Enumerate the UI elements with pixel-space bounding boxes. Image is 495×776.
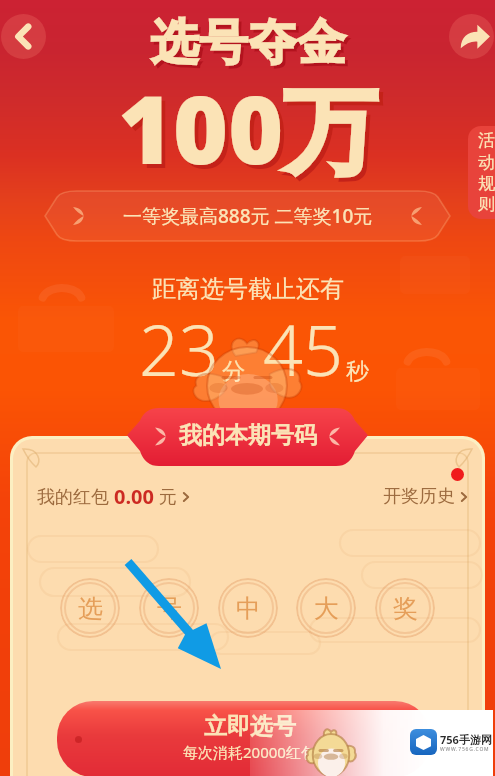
staticText: 活动规则 (477, 130, 495, 215)
staticText: 开奖历史 (383, 485, 455, 508)
staticText: 立即选号 (204, 712, 296, 741)
button[interactable]: Share (449, 14, 494, 59)
staticText: 秒 (346, 357, 369, 386)
staticText: 大 (314, 593, 339, 624)
staticText: 选号夺金 (150, 13, 346, 73)
staticText: 元 (154, 484, 177, 509)
staticText: 选号夺金 (153, 16, 349, 76)
staticText: 756手游网 (440, 732, 492, 747)
staticText: 中 (236, 593, 261, 624)
staticText: WWW.756G.COM (440, 746, 490, 753)
staticText: 选 (78, 593, 103, 624)
button[interactable]: 我的本期号码 (127, 408, 368, 466)
staticText: 奖 (393, 593, 418, 624)
staticText: 23 (139, 301, 219, 396)
button[interactable]: 开奖历史 (383, 479, 473, 514)
button[interactable]: Number slot 号 (139, 578, 199, 638)
staticText: 每次消耗20000红包 (183, 742, 316, 762)
staticText: 一等奖最高888元 二等奖10元 (123, 203, 373, 229)
button[interactable]: 我的红包 (37, 477, 195, 516)
staticText: 我的本期号码 (179, 421, 317, 450)
button[interactable]: Back (1, 14, 46, 59)
staticText: 我的红包 (37, 484, 114, 509)
staticText: 45 (263, 301, 343, 396)
staticText: 号 (157, 593, 182, 624)
staticText: 100万 (122, 68, 382, 196)
staticText: 分 (222, 357, 245, 386)
button[interactable]: Number slot 中 (218, 578, 278, 638)
staticText: 0.00 (114, 483, 154, 510)
staticText: 100万 (118, 64, 378, 192)
staticText: 距离选号截止还有 (152, 274, 344, 304)
button[interactable]: Number slot 大 (296, 578, 356, 638)
button[interactable]: 活动规则 (468, 126, 495, 219)
button[interactable]: Number slot 奖 (375, 578, 435, 638)
button[interactable]: Number slot 选 (60, 578, 120, 638)
button[interactable]: 立即选号 (57, 701, 431, 776)
